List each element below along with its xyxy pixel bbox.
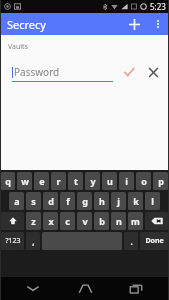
staticText: y — [90, 175, 96, 187]
button[interactable]: ?123 — [1, 232, 24, 250]
button[interactable]: More options — [147, 13, 169, 35]
staticText: , — [32, 236, 35, 247]
staticText: Done — [145, 236, 164, 246]
staticText: p — [158, 175, 164, 187]
button[interactable]: Cancel — [143, 62, 163, 82]
button[interactable]: l — [145, 192, 160, 210]
staticText: z — [31, 215, 36, 227]
staticText: v — [82, 215, 88, 227]
staticText: j — [117, 195, 120, 207]
button[interactable]: c — [60, 212, 75, 230]
staticText: Password — [14, 65, 60, 79]
button[interactable]: r — [51, 172, 66, 190]
staticText: b — [99, 215, 105, 227]
button[interactable]: Add vault — [121, 13, 147, 35]
button[interactable]: x — [43, 212, 58, 230]
button[interactable]: , — [26, 232, 40, 250]
staticText: o — [141, 175, 147, 187]
button[interactable]: u — [102, 172, 117, 190]
staticText: q — [5, 175, 11, 187]
staticText: k — [133, 195, 139, 207]
staticText: s — [31, 195, 36, 207]
staticText: ?123 — [5, 236, 21, 246]
staticText: . — [130, 236, 133, 247]
button[interactable]: d — [43, 192, 58, 210]
button[interactable]: h — [94, 192, 109, 210]
button[interactable]: Recent apps — [117, 277, 155, 300]
button[interactable]: o — [136, 172, 151, 190]
button[interactable]: y — [85, 172, 100, 190]
button[interactable]: Done — [140, 232, 168, 250]
staticText: c — [65, 215, 70, 227]
button[interactable]: Confirm — [119, 62, 139, 82]
button[interactable]: q — [1, 172, 15, 190]
button[interactable]: j — [111, 192, 126, 210]
button[interactable]: g — [77, 192, 92, 210]
button[interactable]: w — [17, 172, 32, 190]
button[interactable]: s — [26, 192, 41, 210]
button[interactable]: Password — [12, 62, 113, 82]
staticText: u — [107, 175, 113, 187]
button[interactable]: t — [68, 172, 83, 190]
button[interactable]: Shift — [1, 212, 24, 230]
button[interactable]: . — [124, 232, 138, 250]
staticText: f — [66, 195, 70, 207]
staticText: d — [48, 195, 54, 207]
button[interactable]: i — [119, 172, 134, 190]
staticText: n — [116, 215, 122, 227]
staticText: 5:23 — [150, 1, 166, 12]
button[interactable]: v — [77, 212, 92, 230]
staticText: a — [14, 195, 20, 207]
staticText: x — [48, 215, 54, 227]
button[interactable]: b — [94, 212, 109, 230]
staticText: h — [99, 195, 105, 207]
staticText: t — [74, 175, 78, 187]
button[interactable]: z — [26, 212, 41, 230]
button[interactable]: m — [128, 212, 143, 230]
staticText: m — [131, 215, 140, 227]
button[interactable]: f — [60, 192, 75, 210]
button[interactable]: a — [9, 192, 24, 210]
staticText: e — [39, 175, 45, 187]
staticText: r — [56, 175, 61, 187]
staticText: w — [21, 175, 29, 187]
staticText: i — [125, 175, 128, 187]
button[interactable]: Hide keyboard — [14, 277, 52, 300]
button[interactable]: e — [34, 172, 49, 190]
button[interactable]: Backspace — [145, 212, 168, 230]
button[interactable]: n — [111, 212, 126, 230]
staticText: l — [151, 195, 154, 207]
button[interactable]: k — [128, 192, 143, 210]
button[interactable]: Home — [66, 277, 104, 300]
button[interactable]: p — [153, 172, 168, 190]
staticText: Secrecy — [7, 17, 46, 32]
staticText: Vaults — [8, 42, 28, 52]
staticText: g — [82, 195, 88, 207]
